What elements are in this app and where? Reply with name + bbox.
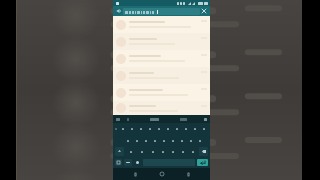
button[interactable]: Key b: [168, 146, 178, 157]
button[interactable]: Shift: [115, 147, 124, 156]
button[interactable]: Backspace: [199, 147, 208, 156]
button[interactable]: [113, 33, 210, 50]
button[interactable]: Key k: [186, 135, 195, 146]
button[interactable]: Key o: [190, 123, 199, 135]
button[interactable]: Key x: [136, 146, 147, 157]
button[interactable]: Key w: [127, 123, 136, 135]
button[interactable]: Key j: [177, 135, 186, 146]
button[interactable]: Key q: [119, 123, 127, 135]
button[interactable]: Key y: [163, 123, 172, 135]
button[interactable]: Clear search: [200, 7, 208, 15]
button[interactable]: Search: [197, 159, 208, 166]
button[interactable]: Back: [115, 7, 123, 15]
button[interactable]: [113, 84, 210, 101]
button[interactable]: Back: [130, 169, 140, 179]
button[interactable]: Key g: [159, 135, 168, 146]
button[interactable]: [113, 101, 210, 115]
button[interactable]: Keyboard options: [114, 123, 119, 135]
button[interactable]: Numbers: [124, 159, 132, 166]
button[interactable]: Key d: [141, 135, 150, 146]
button[interactable]: Key s: [132, 135, 141, 146]
button[interactable]: Key r: [145, 123, 154, 135]
button[interactable]: [113, 67, 210, 84]
button[interactable]: Symbols: [115, 159, 122, 166]
button[interactable]: [123, 8, 200, 15]
button[interactable]: Key h: [168, 135, 177, 146]
button[interactable]: Key v: [158, 146, 168, 157]
button[interactable]: Voice input: [134, 159, 141, 166]
button[interactable]: More suggestions: [204, 118, 207, 121]
button[interactable]: Key i: [181, 123, 190, 135]
button[interactable]: Key t: [154, 123, 163, 135]
button[interactable]: Key e: [136, 123, 145, 135]
button[interactable]: Key u: [172, 123, 181, 135]
button[interactable]: [113, 50, 210, 67]
button[interactable]: Home: [157, 169, 167, 179]
button[interactable]: Key n: [178, 146, 188, 157]
button[interactable]: Key a: [123, 135, 132, 146]
button[interactable]: Suggestion: [116, 118, 120, 121]
button[interactable]: Key f: [150, 135, 159, 146]
button[interactable]: Key p: [199, 123, 208, 135]
button[interactable]: Key c: [147, 146, 158, 157]
button[interactable]: Key m: [188, 146, 198, 157]
button[interactable]: Recent apps: [183, 169, 193, 179]
button[interactable]: Key l: [195, 135, 204, 146]
button[interactable]: Key z: [125, 146, 136, 157]
button[interactable]: [113, 16, 210, 33]
